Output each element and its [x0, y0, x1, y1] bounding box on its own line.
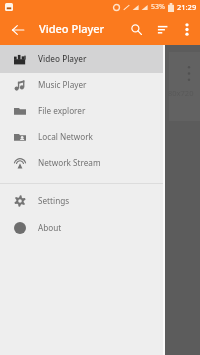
staticText: About	[38, 222, 62, 233]
button[interactable]: More options	[175, 14, 199, 45]
button[interactable]: File explorer	[0, 97, 164, 124]
button[interactable]: Back	[4, 14, 32, 45]
staticText: Video Player	[39, 21, 105, 36]
staticText: Settings	[38, 195, 70, 206]
staticText: 53%	[151, 2, 165, 12]
button[interactable]: Sort	[150, 14, 174, 45]
staticText: Network Stream	[38, 157, 101, 168]
staticText: 21:29	[177, 2, 197, 12]
button[interactable]: Network Stream	[0, 149, 164, 176]
button[interactable]: Music Player	[0, 71, 164, 98]
button[interactable]: Local Network	[0, 123, 164, 150]
staticText: File explorer	[38, 105, 86, 116]
staticText: Video Player	[38, 53, 87, 64]
button[interactable]: Settings	[0, 187, 164, 214]
button[interactable]: About	[0, 214, 164, 241]
button[interactable]: Search	[124, 14, 148, 45]
button[interactable]: Video Player	[0, 45, 164, 72]
staticText: Local Network	[38, 131, 93, 142]
staticText: Music Player	[38, 79, 87, 90]
